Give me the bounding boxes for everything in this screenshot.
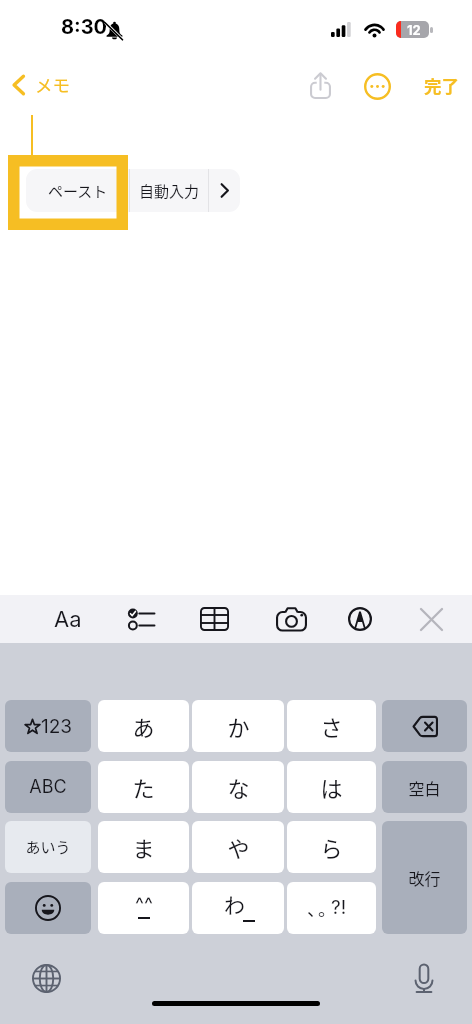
button[interactable]: Emoji [5, 882, 91, 934]
staticText: か [227, 710, 250, 742]
staticText: 。 [318, 895, 331, 921]
staticText: あいう [25, 836, 71, 858]
button[interactable]: 完了 [424, 73, 459, 98]
staticText: ABC [29, 776, 67, 798]
button[interactable]: Checklist [117, 595, 165, 643]
staticText: さ [320, 710, 343, 742]
button[interactable]: ^^ [98, 882, 189, 934]
button[interactable]: は [287, 761, 376, 813]
button[interactable]: 改行 [382, 821, 467, 934]
button[interactable]: Table [190, 595, 238, 643]
button[interactable]: な [192, 761, 284, 813]
button[interactable]: か [192, 700, 284, 752]
button[interactable]: Text format [44, 595, 92, 643]
staticText: 、 [307, 895, 320, 921]
button[interactable]: Delete [382, 700, 467, 752]
staticText: ら [320, 831, 343, 863]
staticText: メモ [35, 72, 70, 97]
button[interactable]: Close keyboard [407, 595, 455, 643]
button[interactable]: Markup [336, 595, 384, 643]
button[interactable]: ら [287, 821, 376, 873]
staticText: 空白 [408, 776, 441, 799]
button[interactable]: Next keyboard [32, 964, 61, 993]
staticText: や [227, 831, 250, 863]
button[interactable]: わ [192, 882, 284, 934]
staticText: 123 [41, 715, 73, 738]
button[interactable]: 、 [287, 882, 376, 934]
button[interactable]: More options [357, 66, 397, 106]
staticText: ?! [331, 896, 347, 919]
button[interactable]: Share [300, 65, 340, 105]
button[interactable]: 自動入力 [130, 169, 208, 212]
staticText: ま [132, 831, 155, 863]
staticText: 8:30 [61, 15, 108, 39]
button[interactable]: ABC [5, 761, 91, 813]
staticText: た [132, 771, 155, 803]
button[interactable]: Dictation [408, 962, 440, 994]
staticText: 12 [407, 22, 421, 38]
button[interactable]: Camera [267, 595, 315, 643]
staticText: あ [132, 710, 155, 742]
button[interactable]: ペースト [26, 169, 129, 212]
button[interactable]: 空白 [382, 761, 467, 813]
button[interactable]: あいう [5, 821, 91, 873]
button[interactable]: さ [287, 700, 376, 752]
staticText: ^^ [135, 893, 153, 916]
staticText: 改行 [408, 866, 441, 889]
staticText: Aa [54, 606, 82, 633]
button[interactable]: メモ [12, 72, 70, 97]
button[interactable]: や [192, 821, 284, 873]
staticText: は [320, 771, 343, 803]
staticText: ペースト [48, 180, 108, 202]
button[interactable]: た [98, 761, 189, 813]
staticText: 完了 [424, 73, 459, 98]
staticText: な [227, 771, 250, 803]
button[interactable]: More menu items [209, 169, 240, 212]
staticText: 自動入力 [139, 180, 200, 202]
button[interactable]: Number and symbol keyboard [5, 700, 91, 752]
button[interactable]: ま [98, 821, 189, 873]
button[interactable]: あ [98, 700, 189, 752]
staticText: わ [224, 889, 245, 919]
